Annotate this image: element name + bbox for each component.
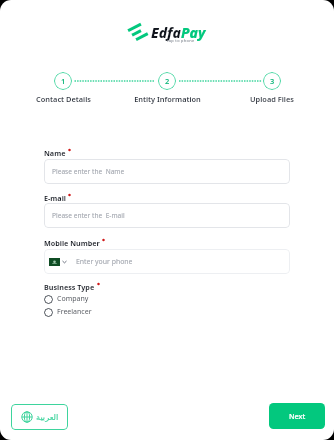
- staticText: 1: [61, 76, 66, 86]
- staticText: Enter your phone: [76, 257, 133, 266]
- staticText: Edfa: [151, 23, 181, 42]
- button[interactable]: Step 1: [54, 72, 72, 90]
- button[interactable]: Freelancer: [44, 306, 92, 318]
- staticText: Upload Files: [250, 94, 294, 104]
- button[interactable]: Enter your phone: [44, 249, 290, 274]
- staticText: E-mail: [44, 193, 66, 203]
- staticText: Business Type: [44, 282, 95, 292]
- staticText: Freelancer: [57, 307, 92, 317]
- staticText: Name: [44, 148, 66, 158]
- staticText: Contact Details: [36, 94, 91, 104]
- staticText: Please enter the Name: [52, 167, 125, 176]
- button[interactable]: Next: [269, 403, 325, 429]
- staticText: Mobile Number: [44, 238, 100, 248]
- staticText: 3: [270, 76, 275, 86]
- button[interactable]: Switch language to Arabic: [11, 404, 68, 430]
- staticText: Pay: [181, 23, 206, 42]
- staticText: Company: [57, 294, 89, 304]
- staticText: Next: [289, 411, 306, 421]
- button[interactable]: Company: [44, 293, 89, 305]
- staticText: Please enter the E-mail: [52, 211, 125, 220]
- staticText: العربية: [36, 412, 59, 422]
- button[interactable]: Please enter the E-mail: [44, 203, 290, 228]
- button[interactable]: Step 2: [158, 72, 176, 90]
- button[interactable]: Step 3: [263, 72, 281, 90]
- staticText: tap to phone: [167, 38, 195, 43]
- staticText: 2: [165, 76, 170, 86]
- staticText: Entity Information: [134, 94, 201, 104]
- button[interactable]: Please enter the Name: [44, 159, 290, 184]
